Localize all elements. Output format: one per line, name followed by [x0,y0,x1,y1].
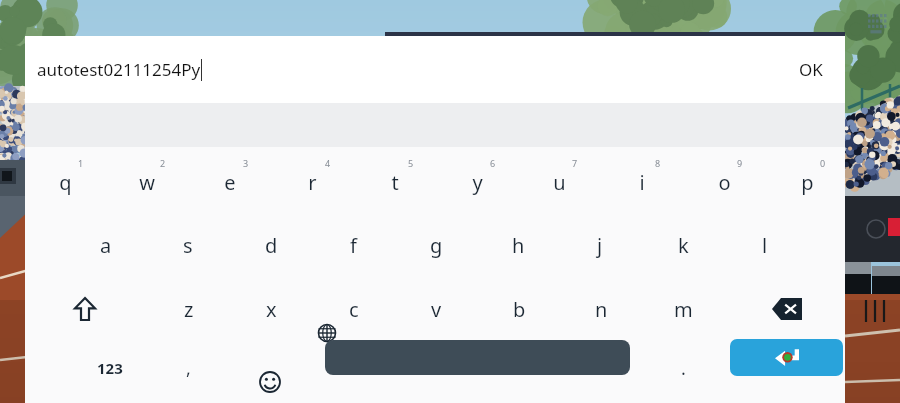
staticText: r [308,169,317,196]
button[interactable]: Change keyboard language [317,323,337,343]
button[interactable]: . [642,343,724,393]
staticText: p [801,169,814,196]
staticText: z [184,296,194,323]
staticText: y [472,169,483,196]
button[interactable]: b [478,283,560,335]
button[interactable]: x [230,283,312,335]
staticText: . [681,356,686,381]
button[interactable]: z [148,283,230,335]
staticText: h [512,232,525,259]
staticText: f [350,232,357,259]
staticText: 3 [243,157,249,169]
staticText: m [674,296,693,323]
staticText: 9 [737,157,743,169]
staticText: o [718,169,731,196]
staticText: v [431,296,442,323]
button[interactable]: c [313,283,395,335]
staticText: l [762,232,768,259]
button[interactable]: 123 [69,343,151,393]
button[interactable]: j [559,219,641,271]
button[interactable]: v [395,283,477,335]
staticText: s [183,232,193,259]
staticText: b [513,296,526,323]
staticText: 123 [97,358,123,378]
button[interactable]: Backspace [746,283,828,335]
button[interactable]: e [189,155,271,210]
button[interactable]: Show keyboard [866,12,890,32]
button[interactable]: h [477,219,559,271]
button[interactable]: Space [325,340,630,375]
staticText: x [266,296,277,323]
staticText: q [59,169,72,196]
button[interactable]: r [271,155,353,210]
button[interactable]: Shift [44,283,126,335]
button[interactable]: , [147,343,229,393]
staticText: g [430,232,443,259]
staticText: t [391,169,399,196]
button[interactable]: t [354,155,436,210]
button[interactable]: u [518,155,600,210]
button[interactable]: q [24,155,106,210]
button[interactable]: k [642,219,724,271]
staticText: 4 [325,157,331,169]
button[interactable]: w [106,155,188,210]
staticText: d [265,232,278,259]
staticText: e [224,169,236,196]
staticText: k [678,232,689,259]
staticText: 6 [490,157,496,169]
staticText: a [100,232,112,259]
staticText: 2 [160,157,166,169]
staticText: OK [799,58,823,81]
button[interactable]: Emoji [235,343,317,393]
staticText: i [639,169,645,196]
staticText: 1 [78,157,84,169]
button[interactable]: Enter [730,339,843,376]
button[interactable]: g [395,219,477,271]
staticText: 7 [572,157,578,169]
staticText: w [139,169,155,196]
staticText: u [553,169,566,196]
staticText: n [595,296,608,323]
button[interactable]: s [147,219,229,271]
button[interactable]: i [601,155,683,210]
button[interactable]: a [65,219,147,271]
staticText: 5 [408,157,414,169]
button[interactable]: OK [777,36,845,103]
button[interactable]: o [683,155,765,210]
button[interactable]: m [642,283,724,335]
button[interactable]: l [724,219,806,271]
button[interactable]: autotest02111254Py [25,36,777,103]
staticText: 8 [655,157,661,169]
staticText: j [597,232,603,259]
button[interactable]: y [436,155,518,210]
button[interactable]: p [766,155,848,210]
staticText: , [186,356,191,381]
button[interactable]: d [230,219,312,271]
button[interactable]: n [560,283,642,335]
staticText: 0 [820,157,826,169]
staticText: autotest02111254Py [37,58,201,81]
staticText: c [349,296,359,323]
button[interactable]: f [312,219,394,271]
